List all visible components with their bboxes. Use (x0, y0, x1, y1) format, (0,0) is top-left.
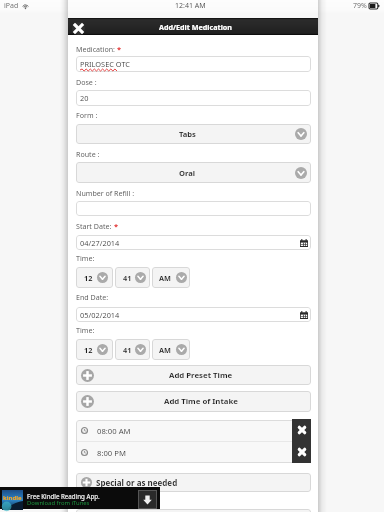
staticText: 79% (353, 1, 367, 11)
button[interactable]: 12 (76, 267, 113, 288)
staticText: 05/02/2014 (80, 310, 120, 320)
button[interactable]: AM (152, 339, 190, 360)
staticText: Medication: (76, 44, 115, 54)
staticText: Add Time of Intake (164, 396, 238, 407)
staticText: 12 (84, 273, 93, 283)
staticText: 41 (123, 345, 132, 355)
staticText: Free Kindle Reading App. (27, 492, 100, 500)
button[interactable]: Delete time (292, 419, 311, 441)
button[interactable]: Download (138, 490, 157, 509)
staticText: 12:41 AM (175, 1, 206, 11)
button[interactable]: PRILOSEC OTC (76, 56, 311, 72)
staticText: AM (159, 273, 171, 283)
staticText: End Date: (76, 292, 109, 302)
button[interactable]: Delete time (292, 441, 311, 463)
staticText: Route : (76, 149, 100, 159)
staticText: kindle (3, 494, 22, 502)
staticText: Number of Refill : (76, 188, 135, 198)
button[interactable] (76, 509, 311, 512)
staticText: Time: (76, 325, 95, 335)
button[interactable]: 20 (76, 90, 311, 106)
staticText: * (115, 44, 122, 54)
button[interactable]: Close (71, 21, 85, 35)
button[interactable]: AM (152, 267, 190, 288)
button[interactable]: 04/27/2014 (76, 235, 311, 250)
button[interactable]: 41 (115, 267, 150, 288)
staticText: Oral (179, 168, 196, 178)
staticText: 08:00 AM (97, 426, 131, 436)
staticText: 04/27/2014 (80, 238, 120, 248)
button[interactable]: kindle (0, 487, 160, 509)
staticText: Add/Edit Medication (159, 22, 232, 32)
staticText: 8:00 PM (97, 448, 126, 458)
staticText: Download from iTunes (27, 499, 90, 507)
staticText: iPad (4, 1, 19, 11)
staticText: 20 (80, 93, 89, 103)
staticText: Start Date: (76, 221, 112, 231)
staticText: Add Preset Time (169, 370, 233, 381)
staticText: * (112, 221, 119, 231)
staticText: PRILOSEC OTC (80, 59, 131, 69)
staticText: Dose : (76, 77, 97, 87)
staticText: 12 (84, 345, 93, 355)
button[interactable]: Oral (76, 162, 311, 183)
button[interactable]: 08:00 AM (76, 420, 311, 441)
staticText: 41 (123, 273, 132, 283)
button[interactable]: 41 (115, 339, 150, 360)
button[interactable]: Add Time of Intake (76, 391, 311, 412)
button[interactable] (76, 201, 311, 216)
staticText: AM (159, 345, 171, 355)
staticText: Special or as needed (96, 477, 178, 488)
staticText: Form : (76, 110, 98, 120)
staticText: Tabs (179, 129, 196, 139)
button[interactable]: Tabs (76, 124, 311, 144)
button[interactable]: 8:00 PM (76, 442, 311, 463)
button[interactable]: Special or as needed (76, 473, 311, 492)
button[interactable]: Add Preset Time (76, 365, 311, 385)
staticText: Time: (76, 253, 95, 263)
button[interactable]: 12 (76, 339, 113, 360)
button[interactable]: 05/02/2014 (76, 307, 311, 322)
